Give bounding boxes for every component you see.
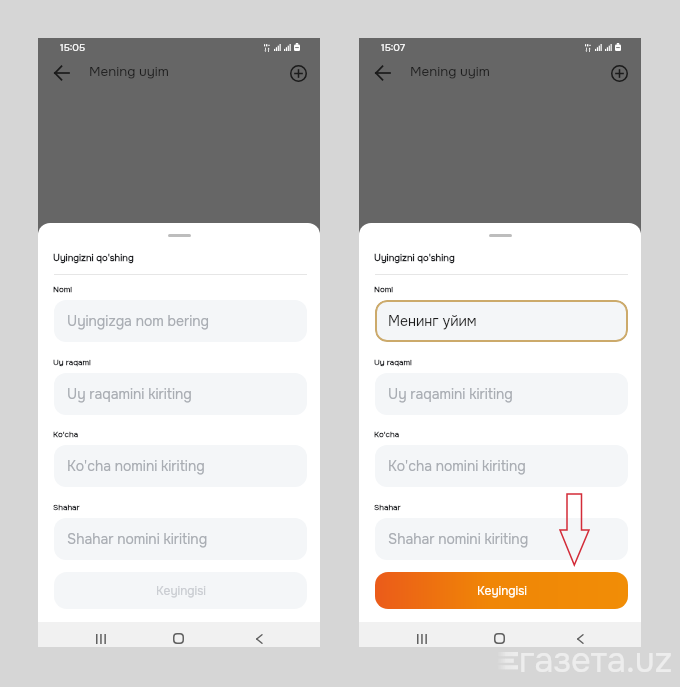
button[interactable]: Shahar nomini kiriting xyxy=(67,518,307,560)
staticText: Keyingisi xyxy=(477,583,527,598)
staticText: Ko'cha nomini kiriting xyxy=(388,457,526,475)
button[interactable]: Keyingisi xyxy=(375,572,628,609)
staticText: Менинг уйим xyxy=(388,312,477,330)
button[interactable]: Менинг уйим xyxy=(388,300,628,342)
staticText: Uyingizga nom bering xyxy=(67,312,209,330)
staticText: Nomi xyxy=(53,284,72,294)
button[interactable]: Keyingisi xyxy=(54,572,307,609)
button[interactable]: Home xyxy=(165,625,193,647)
staticText: Uy raqami xyxy=(374,357,412,367)
staticText: Mening uyim xyxy=(410,63,490,80)
staticText: Shahar xyxy=(374,502,401,512)
staticText: 15:07 xyxy=(381,41,406,54)
button[interactable]: Back xyxy=(47,59,75,87)
button[interactable]: Home xyxy=(486,625,514,647)
staticText: газета.uz xyxy=(519,639,673,683)
button[interactable]: Ko'cha nomini kiriting xyxy=(388,445,628,487)
staticText: 15:05 xyxy=(60,41,86,54)
staticText: Ko'cha xyxy=(374,429,400,439)
staticText: Shahar nomini kiriting xyxy=(67,530,208,548)
staticText: Uy raqami xyxy=(53,357,91,367)
staticText: Uyingizni qo'shing xyxy=(53,252,134,264)
button[interactable]: Uy raqamini kiriting xyxy=(388,373,628,415)
button[interactable]: Recent apps xyxy=(408,625,436,647)
staticText: Mening uyim xyxy=(89,63,169,80)
staticText: Keyingisi xyxy=(156,583,206,598)
button[interactable]: Back xyxy=(245,625,273,647)
button[interactable]: Shahar nomini kiriting xyxy=(388,518,628,560)
button[interactable]: Add home xyxy=(284,59,312,87)
button[interactable]: Uyingizga nom bering xyxy=(67,300,307,342)
staticText: Shahar nomini kiriting xyxy=(388,530,529,548)
button[interactable]: Back xyxy=(368,59,396,87)
button[interactable]: Uy raqamini kiriting xyxy=(67,373,307,415)
button[interactable]: Recent apps xyxy=(87,625,115,647)
staticText: Ko'cha xyxy=(53,429,79,439)
button[interactable]: Ko'cha nomini kiriting xyxy=(67,445,307,487)
staticText: Uyingizni qo'shing xyxy=(374,252,455,264)
staticText: Nomi xyxy=(374,284,393,294)
staticText: Ko'cha nomini kiriting xyxy=(67,457,205,475)
staticText: Uy raqamini kiriting xyxy=(67,385,192,403)
staticText: Uy raqamini kiriting xyxy=(388,385,513,403)
button[interactable]: Back xyxy=(566,625,594,647)
button[interactable]: Add home xyxy=(605,59,633,87)
staticText: Shahar xyxy=(53,502,80,512)
